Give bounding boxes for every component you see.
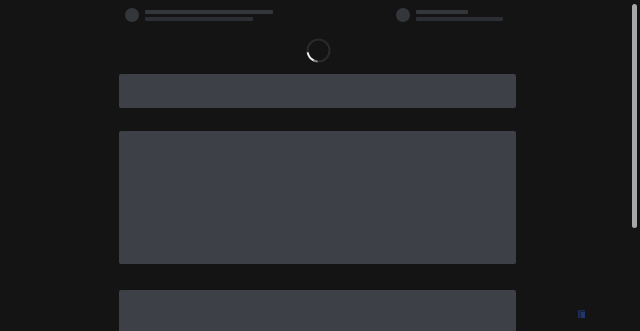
- other: Loading: [306, 38, 331, 63]
- other: Logo: [576, 308, 588, 320]
